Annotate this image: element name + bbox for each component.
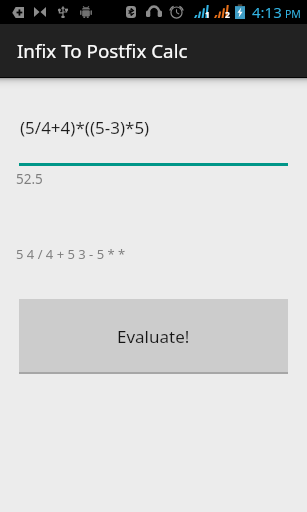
staticText: PM	[285, 7, 301, 21]
staticText: Infix To Postfix Calc	[17, 38, 188, 64]
staticText: 5 4 / 4 + 5 3 - 5 * *	[16, 245, 126, 263]
staticText: 1	[205, 9, 210, 21]
staticText: 2	[225, 9, 230, 21]
button[interactable]: Evaluate!	[19, 299, 288, 374]
staticText: 4:13	[252, 2, 282, 22]
staticText: 52.5	[16, 170, 43, 188]
staticText: Evaluate!	[117, 325, 190, 348]
staticText: (5/4+4)*((5-3)*5)	[20, 116, 150, 139]
